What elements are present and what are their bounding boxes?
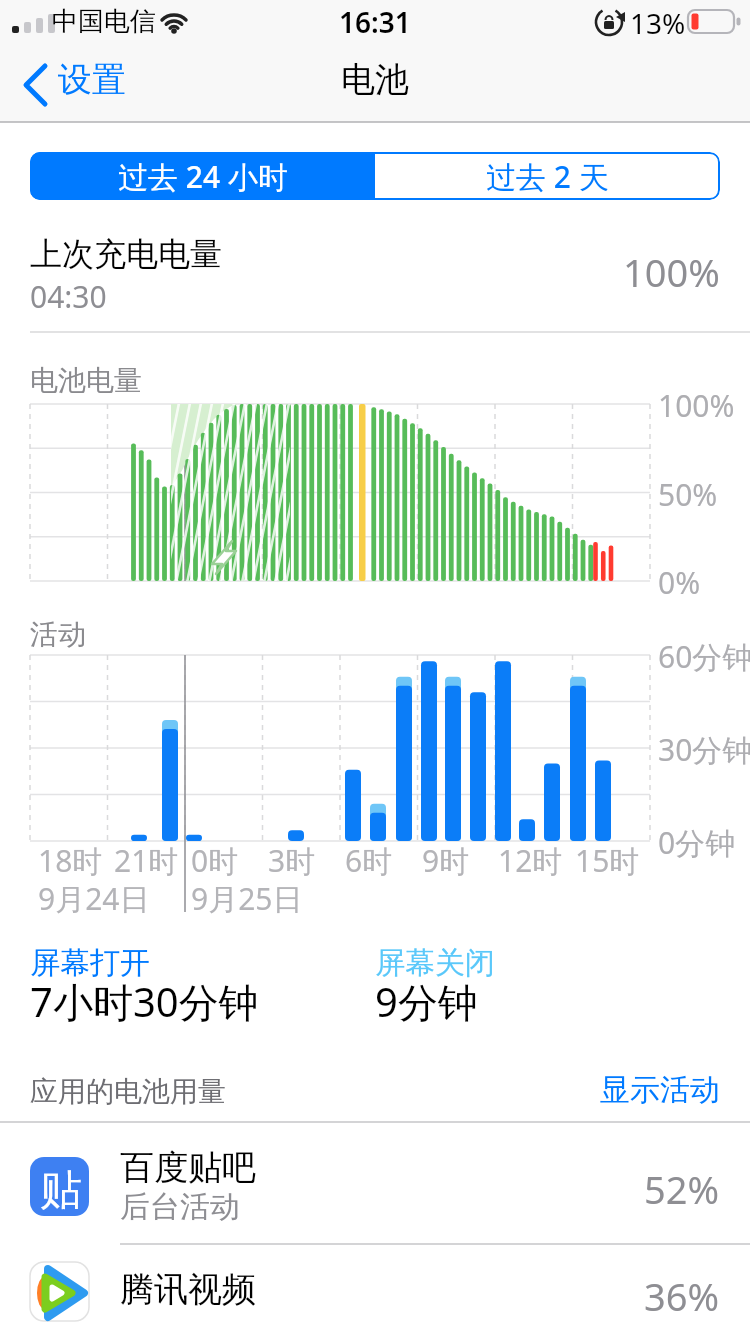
- staticText: 9月25日: [191, 878, 303, 919]
- staticText: 13%: [630, 4, 686, 42]
- staticText: 52%: [644, 1163, 720, 1215]
- staticText: 腾讯视频: [120, 1268, 256, 1311]
- staticText: 应用的电池用量: [30, 1074, 226, 1109]
- staticText: 活动: [30, 617, 86, 652]
- staticText: 3时: [268, 840, 316, 881]
- staticText: 9时: [422, 840, 470, 881]
- staticText: 后台活动: [120, 1188, 240, 1226]
- staticText: 30分钟: [658, 729, 750, 770]
- staticText: 16:31: [339, 3, 411, 41]
- staticText: 21时: [114, 840, 179, 881]
- staticText: 100%: [658, 385, 735, 426]
- staticText: 04:30: [30, 276, 107, 317]
- staticText: 18时: [38, 840, 103, 881]
- button[interactable]: 显示活动: [600, 1071, 720, 1109]
- staticText: 上次充电电量: [30, 234, 222, 274]
- button[interactable]: 腾讯视频: [0, 1246, 750, 1334]
- staticText: 6时: [345, 840, 393, 881]
- button[interactable]: 过去 24 小时: [30, 152, 375, 200]
- staticText: 0%: [658, 562, 701, 603]
- staticText: 电池: [341, 58, 409, 101]
- staticText: 设置: [58, 58, 126, 101]
- staticText: 100%: [623, 246, 720, 298]
- staticText: 50%: [658, 474, 718, 515]
- button[interactable]: 设置: [16, 56, 136, 108]
- button[interactable]: 过去 2 天: [375, 152, 720, 200]
- staticText: 过去 2 天: [486, 156, 609, 197]
- staticText: 36%: [644, 1270, 720, 1322]
- staticText: 9月24日: [38, 878, 150, 919]
- staticText: 屏幕关闭: [375, 944, 495, 982]
- staticText: 百度贴吧: [120, 1146, 256, 1189]
- staticText: 屏幕打开: [30, 944, 150, 982]
- staticText: 贴: [40, 1164, 82, 1217]
- staticText: 9分钟: [375, 974, 478, 1029]
- staticText: 中国电信: [52, 5, 156, 38]
- staticText: 60分钟: [658, 636, 750, 677]
- staticText: 7小时30分钟: [30, 974, 259, 1029]
- staticText: 15时: [575, 840, 640, 881]
- staticText: 0时: [191, 840, 239, 881]
- staticText: 0分钟: [658, 822, 736, 863]
- staticText: 电池电量: [30, 363, 142, 398]
- staticText: 过去 24 小时: [118, 156, 288, 197]
- staticText: 12时: [498, 840, 563, 881]
- button[interactable]: 百度贴吧: [0, 1130, 750, 1244]
